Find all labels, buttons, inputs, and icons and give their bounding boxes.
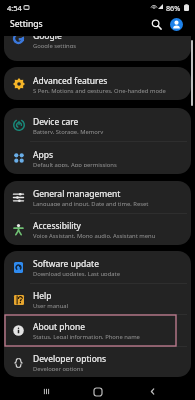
button[interactable]: Apps <box>4 141 191 174</box>
staticText: Device care <box>33 116 79 128</box>
staticText: Voice Assistant, Mono audio, Assistant m… <box>33 232 156 238</box>
staticText: Battery, Storage, Memory <box>33 128 104 134</box>
button[interactable]: Software update <box>4 251 191 283</box>
staticText: Apps <box>33 149 53 161</box>
staticText: Settings <box>10 18 43 30</box>
staticText: Advanced features <box>33 75 108 87</box>
button[interactable]: Help <box>4 283 191 315</box>
button[interactable]: About phone <box>4 314 191 346</box>
staticText: Google settings <box>33 42 77 48</box>
staticText: S Pen, Motions and gestures, One-handed … <box>33 87 166 93</box>
staticText: Developer options <box>33 353 107 365</box>
staticText: 4:54 <box>7 3 22 13</box>
button[interactable]: Google <box>4 36 191 61</box>
button[interactable]: Search <box>147 15 166 34</box>
button[interactable]: Device care <box>4 108 191 141</box>
staticText: Download updates, Last update <box>33 270 120 276</box>
button[interactable]: Recents <box>33 380 59 400</box>
staticText: Google <box>33 36 62 42</box>
staticText: User manual <box>33 302 69 308</box>
button[interactable]: Home <box>85 380 111 400</box>
button[interactable]: Developer options <box>4 346 191 377</box>
staticText: Help <box>33 290 52 302</box>
staticText: Default apps, App permissions <box>33 161 117 167</box>
staticText: 86% <box>166 3 181 13</box>
staticText: Status, Legal information, Phone name <box>33 333 140 339</box>
button[interactable]: Account <box>167 15 186 34</box>
button[interactable]: Back <box>139 380 165 400</box>
button[interactable]: Accessibility <box>4 213 191 245</box>
staticText: Developer options <box>33 365 84 371</box>
button[interactable]: General management <box>4 181 191 213</box>
staticText: General management <box>33 188 121 200</box>
button[interactable]: Advanced features <box>4 67 191 100</box>
staticText: Accessibility <box>33 220 81 232</box>
staticText: About phone <box>33 321 86 333</box>
staticText: Software update <box>33 258 99 270</box>
staticText: Language and input, Date and time, Reset <box>33 200 149 206</box>
